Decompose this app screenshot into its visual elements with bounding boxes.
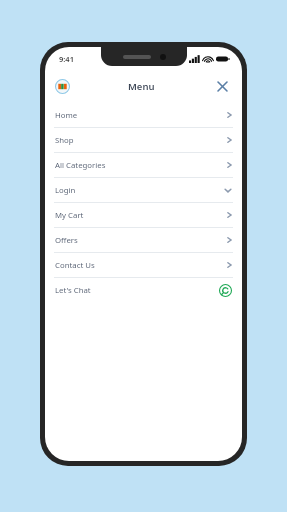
- staticText: My Cart: [55, 210, 84, 221]
- staticText: Let's Chat: [55, 285, 91, 296]
- button[interactable]: All Categories: [45, 153, 242, 177]
- staticText: Menu: [128, 80, 155, 93]
- staticText: Shop: [55, 135, 74, 146]
- button[interactable]: App logo: [55, 79, 70, 94]
- staticText: Offers: [55, 235, 78, 246]
- button[interactable]: Home: [45, 103, 242, 127]
- button[interactable]: Chat on WhatsApp: [218, 283, 232, 297]
- button[interactable]: Close menu: [212, 76, 232, 96]
- button[interactable]: Login: [45, 178, 242, 202]
- button[interactable]: Offers: [45, 228, 242, 252]
- button[interactable]: Shop: [45, 128, 242, 152]
- button[interactable]: My Cart: [45, 203, 242, 227]
- staticText: 9:41: [59, 54, 74, 64]
- button[interactable]: Contact Us: [45, 253, 242, 277]
- staticText: Home: [55, 110, 78, 121]
- staticText: Contact Us: [55, 260, 95, 271]
- button[interactable]: Let's Chat: [45, 278, 242, 302]
- staticText: All Categories: [55, 160, 106, 171]
- staticText: Login: [55, 185, 76, 196]
